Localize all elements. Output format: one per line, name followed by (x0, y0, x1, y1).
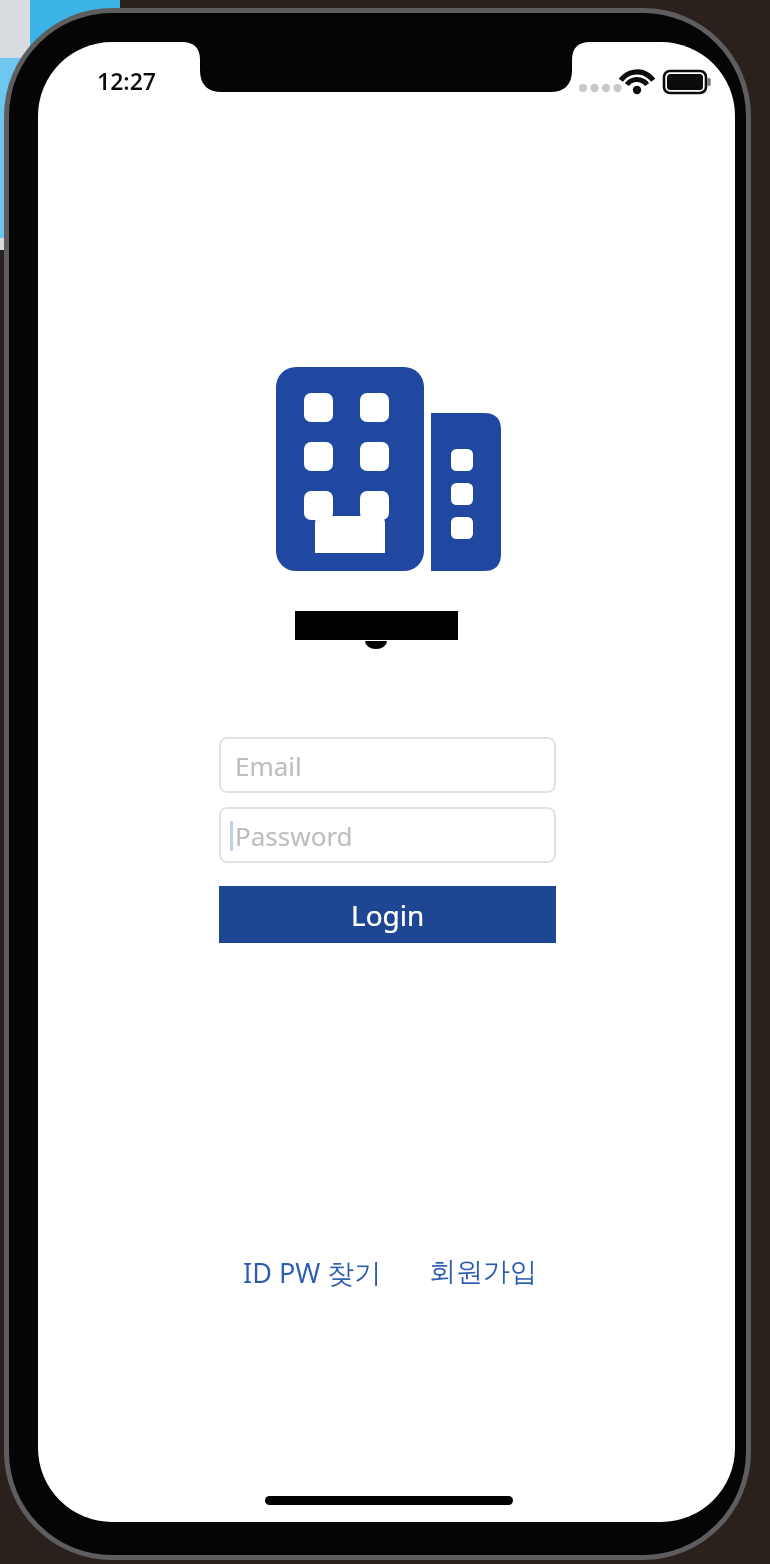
staticText: Login (351, 896, 425, 934)
button[interactable]: Login (219, 886, 556, 943)
staticText: Password (235, 818, 353, 853)
staticText: 12:27 (97, 65, 156, 96)
button[interactable]: ID PW 찾기 (231, 1248, 393, 1296)
staticText: ID PW 찾기 (243, 1254, 382, 1291)
button[interactable]: Password (219, 807, 556, 863)
staticText: Email (235, 748, 302, 783)
staticText: 회원가입 (429, 1255, 537, 1289)
button[interactable]: Email (219, 737, 556, 793)
button[interactable]: 회원가입 (420, 1248, 546, 1296)
